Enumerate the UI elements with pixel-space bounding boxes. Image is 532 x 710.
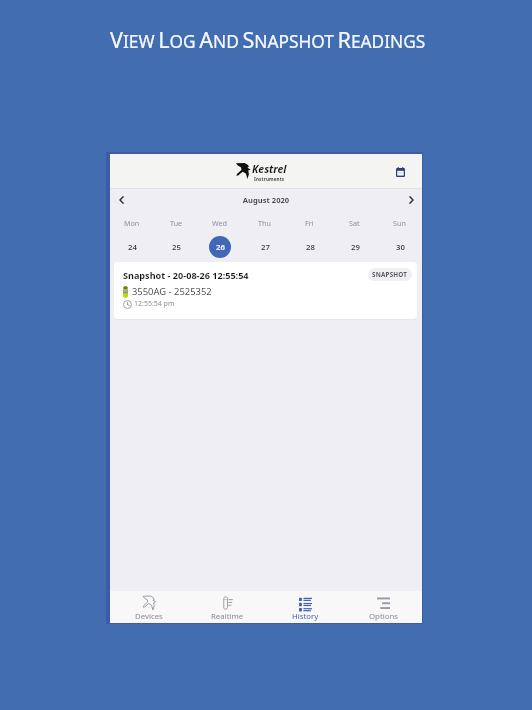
button[interactable]: Tue bbox=[154, 211, 198, 258]
staticText: 12:55:54 pm bbox=[134, 299, 175, 309]
button[interactable]: Mon bbox=[110, 211, 154, 258]
staticText: 26 bbox=[216, 242, 225, 253]
button[interactable]: History bbox=[266, 591, 344, 623]
staticText: Realtime bbox=[211, 611, 244, 622]
button[interactable]: Wed bbox=[198, 211, 242, 258]
staticText: August 2020 bbox=[131, 195, 401, 205]
staticText: SNAPSHOT bbox=[372, 270, 408, 279]
staticText: Tue bbox=[170, 218, 183, 228]
button[interactable]: Thu bbox=[242, 211, 287, 258]
staticText: Fri bbox=[305, 218, 314, 228]
staticText: 3550AG - 2525352 bbox=[132, 285, 212, 298]
staticText: Thu bbox=[258, 218, 271, 228]
button[interactable]: Snapshot - 20-08-26 12:55:54 bbox=[114, 262, 417, 319]
staticText: Options bbox=[369, 611, 398, 622]
button[interactable]: Realtime bbox=[188, 591, 266, 623]
staticText: Sun bbox=[393, 218, 406, 228]
staticText: 29 bbox=[351, 242, 360, 253]
staticText: Snapshot - 20-08-26 12:55:54 bbox=[123, 269, 249, 281]
staticText: History bbox=[292, 611, 319, 622]
staticText: 27 bbox=[261, 242, 270, 253]
button[interactable]: Previous month bbox=[111, 190, 131, 210]
button[interactable]: Devices bbox=[110, 591, 188, 623]
staticText: 28 bbox=[306, 242, 315, 253]
button[interactable]: Next month bbox=[401, 190, 421, 210]
staticText: 25 bbox=[172, 242, 181, 253]
staticText: Mon bbox=[124, 218, 140, 228]
button[interactable]: Sun bbox=[377, 211, 422, 258]
staticText: VIEW LOG AND SNAPSHOT READINGS bbox=[110, 25, 426, 54]
staticText: Sat bbox=[349, 218, 360, 228]
button[interactable]: Fri bbox=[287, 211, 332, 258]
staticText: Instruments bbox=[254, 176, 285, 182]
button[interactable]: Pick date bbox=[390, 162, 410, 182]
staticText: 30 bbox=[396, 242, 405, 253]
staticText: Devices bbox=[135, 611, 163, 622]
staticText: 24 bbox=[128, 242, 137, 253]
button[interactable]: Sat bbox=[332, 211, 377, 258]
staticText: Kestrel bbox=[252, 162, 287, 176]
button[interactable]: Options bbox=[344, 591, 422, 623]
staticText: Wed bbox=[212, 218, 228, 228]
